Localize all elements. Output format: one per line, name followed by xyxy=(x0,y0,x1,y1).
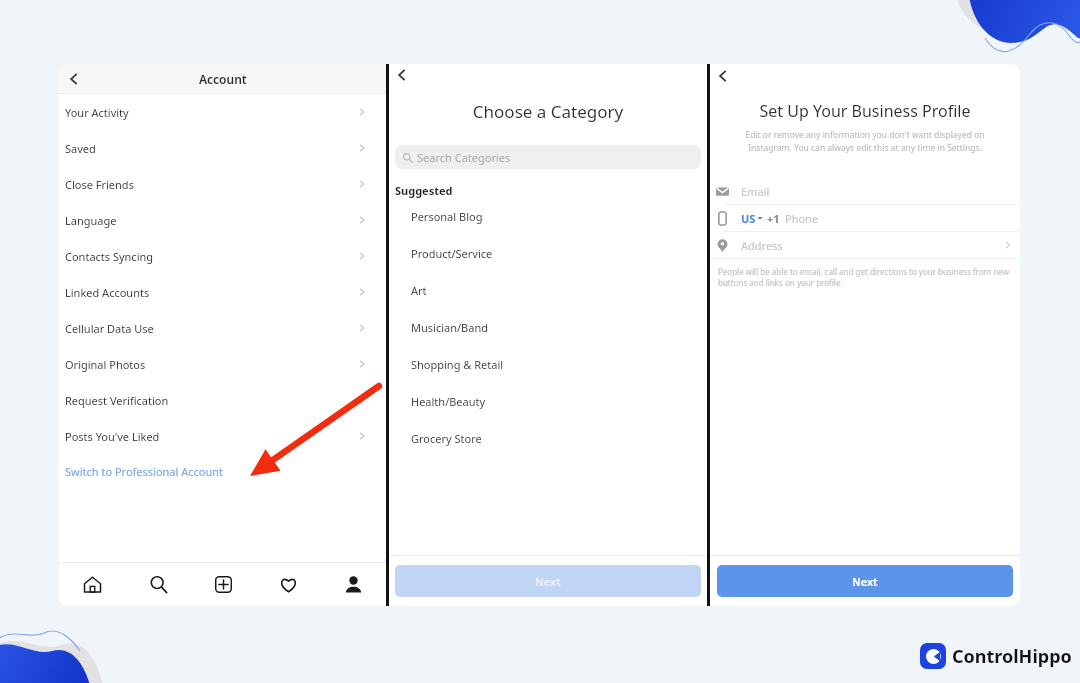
button[interactable]: Activity xyxy=(256,563,321,606)
staticText: Address xyxy=(741,238,1004,253)
staticText: Email xyxy=(741,184,1012,199)
button[interactable]: Musician/Band xyxy=(389,309,707,346)
staticText: Switch to Professional Account xyxy=(65,464,224,479)
button[interactable]: Language xyxy=(59,202,386,238)
staticText: +1 xyxy=(767,211,780,226)
button[interactable]: Switch to Professional Account xyxy=(59,454,386,488)
staticText: Next xyxy=(852,574,878,589)
button[interactable]: Create xyxy=(191,563,256,606)
staticText: Suggested xyxy=(395,183,453,198)
button[interactable]: Shopping & Retail xyxy=(389,346,707,383)
staticText: Grocery Store xyxy=(411,431,482,446)
staticText: Saved xyxy=(65,141,358,156)
staticText: Set Up Your Business Profile xyxy=(710,100,1020,122)
button[interactable]: Back xyxy=(391,64,413,86)
button[interactable]: Linked Accounts xyxy=(59,274,386,310)
button[interactable]: Cellular Data Use xyxy=(59,310,386,346)
button[interactable]: Saved xyxy=(59,130,386,166)
button[interactable]: Address xyxy=(710,232,1020,258)
button[interactable]: Home xyxy=(59,563,125,606)
staticText: Art xyxy=(411,283,427,298)
button[interactable]: Search xyxy=(125,563,191,606)
staticText: Search Categories xyxy=(417,150,511,165)
staticText: Personal Blog xyxy=(411,209,483,224)
button[interactable]: Contacts Syncing xyxy=(59,238,386,274)
staticText: Request Verification xyxy=(65,393,358,408)
button[interactable]: Email xyxy=(710,178,1020,204)
button[interactable]: US xyxy=(710,205,1020,231)
button[interactable]: Original Photos xyxy=(59,346,386,382)
staticText: Shopping & Retail xyxy=(411,357,504,372)
staticText: Product/Service xyxy=(411,246,493,261)
button[interactable]: Close Friends xyxy=(59,166,386,202)
button[interactable]: Request Verification xyxy=(59,382,386,418)
staticText: Cellular Data Use xyxy=(65,321,358,336)
button[interactable]: Posts You've Liked xyxy=(59,418,386,454)
staticText: People will be able to email, call and g… xyxy=(718,266,1012,289)
staticText: Health/Beauty xyxy=(411,394,486,409)
button[interactable]: Next xyxy=(717,565,1013,597)
staticText: Phone xyxy=(785,211,819,226)
staticText: Original Photos xyxy=(65,357,358,372)
staticText: Close Friends xyxy=(65,177,358,192)
button[interactable]: Search Categories xyxy=(395,145,701,169)
button[interactable]: Back xyxy=(61,66,87,92)
staticText: Edit or remove any information you don't… xyxy=(740,129,990,154)
button[interactable]: Your Activity xyxy=(59,94,386,130)
staticText: Account xyxy=(199,71,247,87)
button[interactable]: Product/Service xyxy=(389,235,707,272)
staticText: Posts You've Liked xyxy=(65,429,358,444)
button[interactable]: Personal Blog xyxy=(389,198,707,235)
staticText: Language xyxy=(65,213,358,228)
button[interactable]: Grocery Store xyxy=(389,420,707,457)
staticText: Your Activity xyxy=(65,105,358,120)
button[interactable]: Art xyxy=(389,272,707,309)
staticText: Linked Accounts xyxy=(65,285,358,300)
staticText: ControlHippo xyxy=(952,644,1072,669)
staticText: US xyxy=(741,211,756,226)
button[interactable]: Back xyxy=(712,65,734,87)
staticText: Choose a Category xyxy=(389,100,707,123)
staticText: Musician/Band xyxy=(411,320,488,335)
staticText: Next xyxy=(535,574,561,589)
button[interactable]: Next xyxy=(395,565,701,597)
button[interactable]: Profile xyxy=(321,563,386,606)
button[interactable]: Health/Beauty xyxy=(389,383,707,420)
staticText: Contacts Syncing xyxy=(65,249,358,264)
